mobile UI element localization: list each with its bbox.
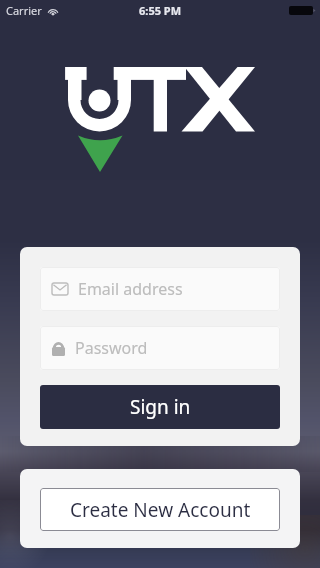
staticText: Carrier [6,3,42,18]
button[interactable]: Password [40,326,280,370]
staticText: 6:55 PM [139,3,182,18]
button[interactable]: Email address [40,267,280,311]
button[interactable]: Sign in [40,385,280,429]
staticText: Create New Account [70,497,251,523]
staticText: Email address [78,278,183,300]
button[interactable]: Create New Account [40,488,280,531]
staticText: Sign in [130,394,191,420]
staticText: Password [75,337,148,359]
